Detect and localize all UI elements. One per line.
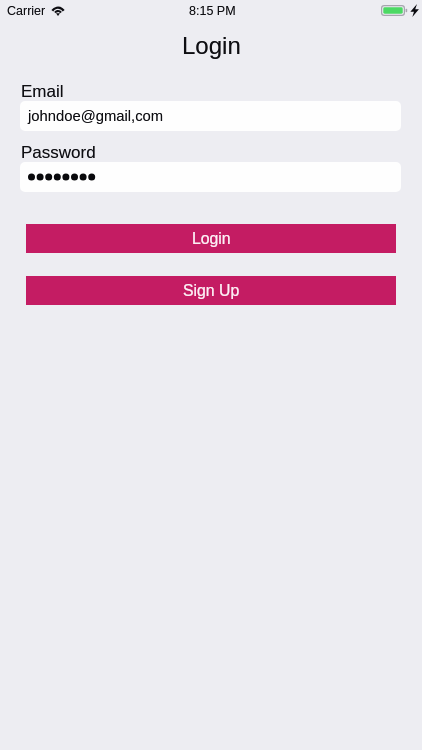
other: Battery	[381, 5, 407, 16]
other: Wi-Fi	[50, 4, 66, 15]
button[interactable]	[20, 162, 401, 192]
button[interactable]: Login	[26, 224, 396, 253]
staticText: 8:15 PM	[189, 4, 236, 18]
staticText: 8:15 PM	[189, 4, 236, 18]
staticText: Login	[192, 230, 231, 248]
staticText: Password	[21, 143, 96, 162]
staticText: Email	[21, 82, 64, 101]
staticText: Email	[21, 82, 64, 101]
staticText: Sign Up	[183, 282, 240, 300]
staticText: Carrier	[7, 4, 46, 18]
button[interactable]: Sign Up	[26, 276, 396, 305]
staticText: Login	[182, 32, 241, 59]
staticText: johndoe@gmail,com	[28, 108, 164, 125]
other: Charging	[410, 4, 419, 17]
staticText: Carrier	[7, 4, 46, 18]
staticText: Login	[182, 32, 241, 59]
staticText: Password	[21, 143, 96, 162]
button[interactable]: johndoe@gmail,com	[20, 101, 401, 131]
staticText: johndoe@gmail,com	[28, 108, 164, 125]
